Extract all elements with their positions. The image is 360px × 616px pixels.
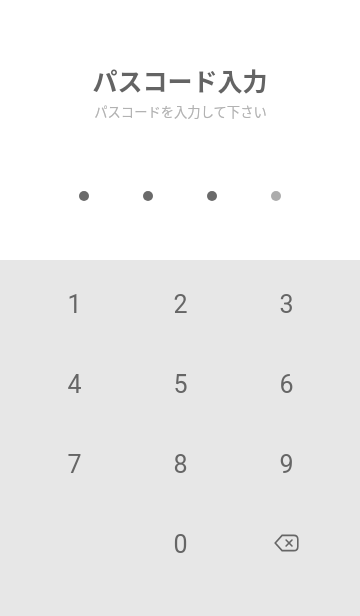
staticText: 9 bbox=[279, 450, 294, 479]
staticText: 1 bbox=[67, 290, 82, 319]
button[interactable]: Backspace bbox=[233, 504, 339, 584]
button[interactable]: 9 bbox=[233, 424, 339, 504]
staticText: 6 bbox=[279, 370, 294, 399]
staticText: パスコード入力 bbox=[92, 62, 268, 98]
button[interactable]: 2 bbox=[127, 264, 233, 344]
staticText: 5 bbox=[173, 370, 188, 399]
staticText: 0 bbox=[173, 530, 188, 559]
button[interactable]: 5 bbox=[127, 344, 233, 424]
button[interactable]: 3 bbox=[233, 264, 339, 344]
button[interactable]: 0 bbox=[127, 504, 233, 584]
staticText: パスコードを入力して下さい bbox=[94, 102, 267, 121]
button[interactable]: 8 bbox=[127, 424, 233, 504]
staticText: 7 bbox=[67, 450, 82, 479]
staticText: 8 bbox=[173, 450, 188, 479]
staticText: 2 bbox=[173, 290, 188, 319]
staticText: 3 bbox=[279, 290, 294, 319]
button[interactable]: 6 bbox=[233, 344, 339, 424]
button[interactable]: 7 bbox=[21, 424, 127, 504]
staticText: 4 bbox=[67, 370, 82, 399]
button[interactable]: 1 bbox=[21, 264, 127, 344]
button[interactable]: 4 bbox=[21, 344, 127, 424]
